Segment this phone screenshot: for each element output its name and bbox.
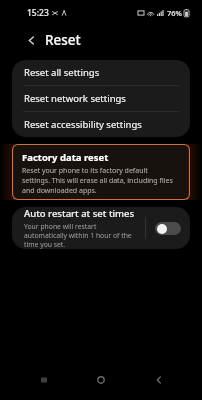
staticText: 76% <box>167 8 182 18</box>
button[interactable]: Factory data reset <box>12 144 190 200</box>
staticText: Reset network settings <box>24 92 126 105</box>
staticText: Reset <box>45 31 81 49</box>
staticText: Auto restart at set times <box>24 207 135 220</box>
staticText: Reset all settings <box>24 66 100 79</box>
button[interactable]: Reset network settings <box>12 86 190 111</box>
staticText: Your phone will restart automatically wi… <box>24 222 137 249</box>
staticText: Factory data reset <box>22 151 109 164</box>
button[interactable]: Home <box>87 368 115 392</box>
staticText: Reset accessibility settings <box>24 118 142 131</box>
button[interactable]: Back <box>23 32 39 48</box>
button[interactable]: Reset all settings <box>12 60 190 85</box>
button[interactable]: Recents <box>30 368 58 392</box>
button[interactable]: Auto restart at set times <box>12 207 145 249</box>
button[interactable]: Auto restart at set times, off <box>146 207 190 249</box>
staticText: 15:23 <box>27 7 49 19</box>
button[interactable]: Back <box>145 368 173 392</box>
staticText: Reset your phone to its factory default … <box>22 166 177 196</box>
button[interactable]: Reset accessibility settings <box>12 112 190 137</box>
